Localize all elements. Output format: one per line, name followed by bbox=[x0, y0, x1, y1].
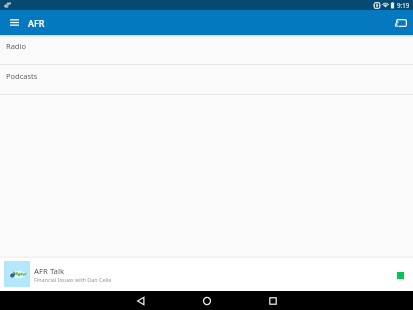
button[interactable]: Back bbox=[124, 291, 158, 310]
button[interactable]: Open navigation menu bbox=[2, 10, 27, 35]
staticText: 9:19 bbox=[397, 1, 410, 9]
staticText: AFR Talk bbox=[34, 266, 65, 277]
staticText: Radio bbox=[6, 41, 26, 51]
button[interactable]: Radio bbox=[0, 35, 413, 64]
button[interactable]: Home bbox=[190, 291, 224, 310]
staticText: Podcasts bbox=[6, 71, 38, 81]
button[interactable]: Stop playback bbox=[391, 266, 409, 284]
button[interactable]: AFR Talk bbox=[0, 258, 413, 291]
staticText: Financial Issues with Dan Celia bbox=[34, 276, 112, 283]
staticText: AFR bbox=[28, 17, 45, 29]
button[interactable]: Podcasts bbox=[0, 65, 413, 94]
button[interactable]: Recent apps bbox=[256, 291, 290, 310]
button[interactable]: Cast bbox=[388, 10, 413, 35]
